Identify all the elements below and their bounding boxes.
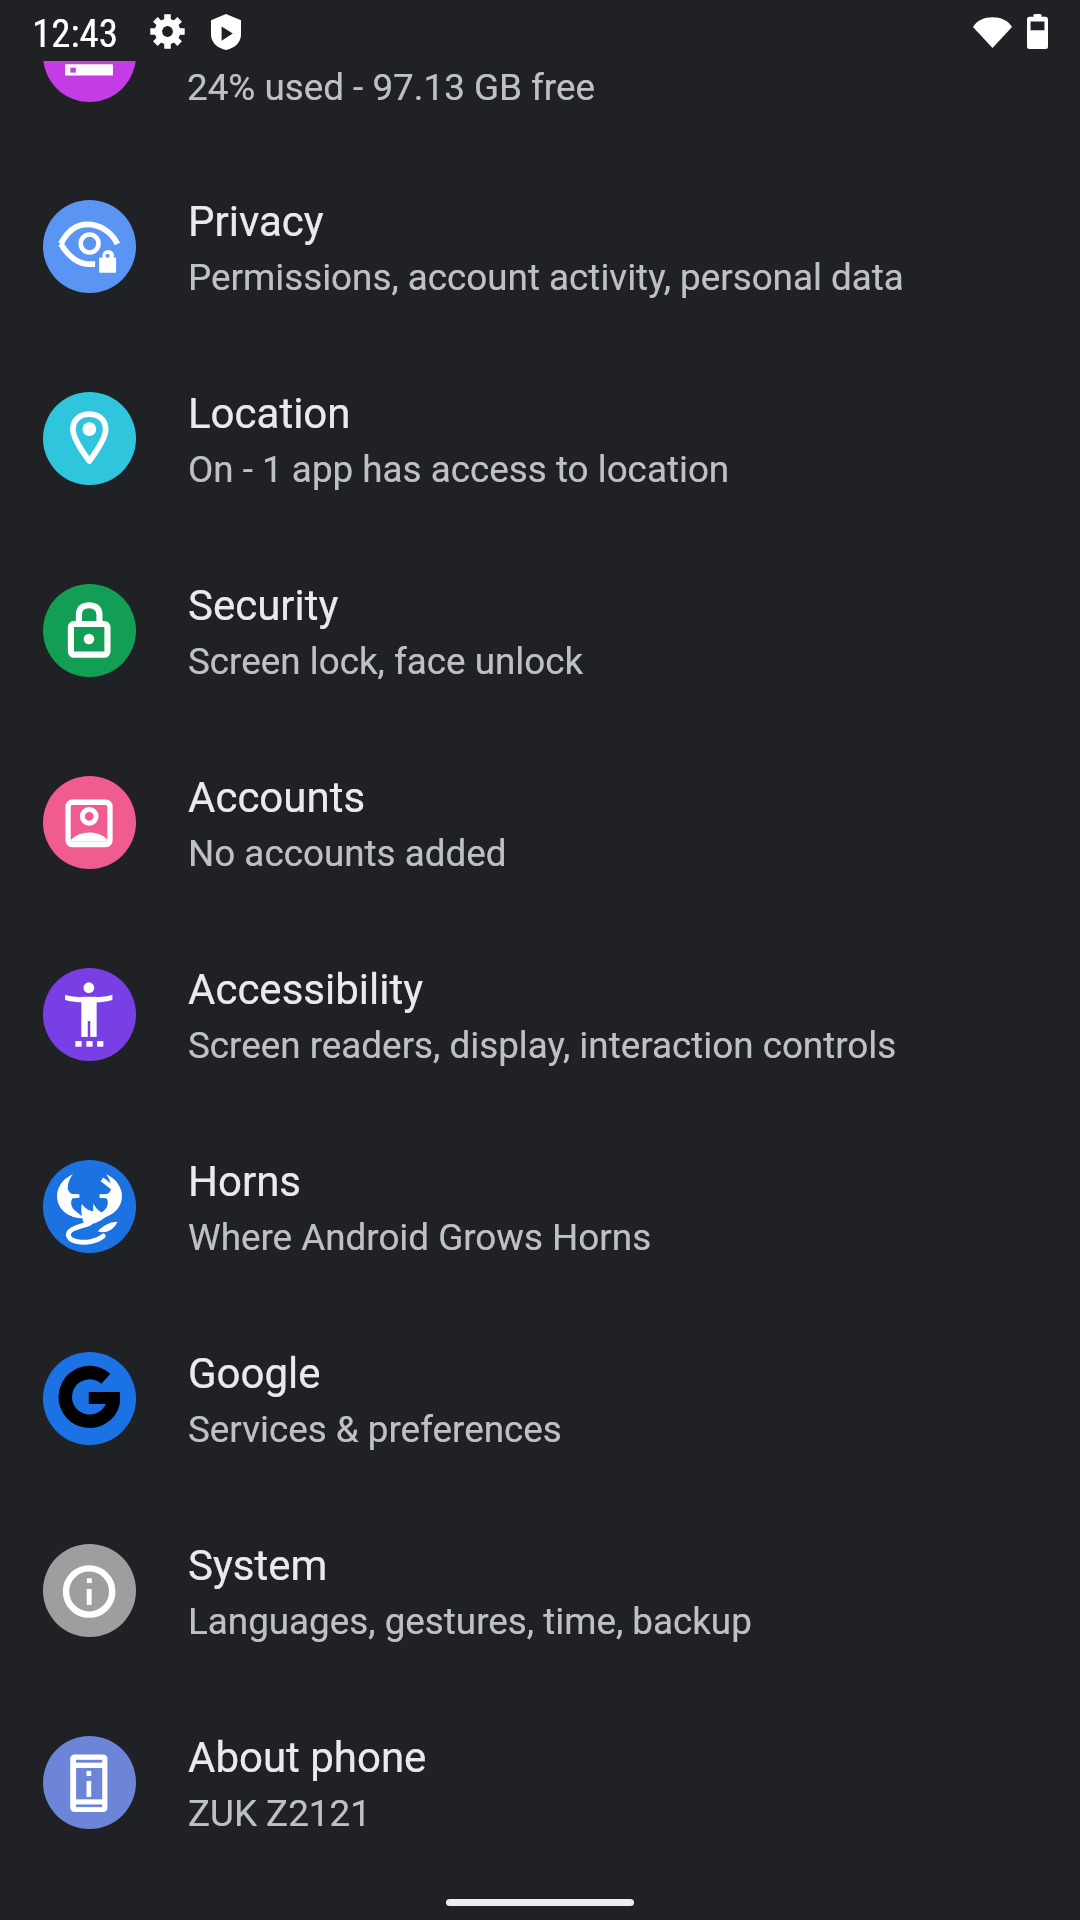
button[interactable]: Horns <box>0 1110 1080 1302</box>
button[interactable]: Location <box>0 342 1080 534</box>
staticText: Privacy <box>188 197 324 246</box>
button[interactable]: Google <box>0 1302 1080 1494</box>
staticText: Where Android Grows Horns <box>188 1216 652 1259</box>
staticText: 12:43 <box>32 11 119 57</box>
staticText: Location <box>188 389 351 438</box>
other: Home <box>446 1899 634 1906</box>
other: Settings <box>151 14 184 49</box>
staticText: Permissions, account activity, personal … <box>188 256 904 299</box>
button[interactable]: Accounts <box>0 726 1080 918</box>
staticText: Accounts <box>188 773 366 822</box>
staticText: About phone <box>188 1733 427 1782</box>
other: Play Protect <box>211 14 241 50</box>
staticText: System <box>188 1541 328 1590</box>
staticText: Screen readers, display, interaction con… <box>188 1024 897 1067</box>
staticText: Languages, gestures, time, backup <box>188 1600 752 1643</box>
staticText: 24% used - 97.13 GB free <box>187 66 596 109</box>
button[interactable]: Privacy <box>0 150 1080 342</box>
staticText: No accounts added <box>188 832 507 875</box>
staticText: Horns <box>188 1157 302 1206</box>
staticText: Google <box>188 1349 321 1398</box>
staticText: Screen lock, face unlock <box>188 640 584 683</box>
button[interactable]: System <box>0 1494 1080 1686</box>
button[interactable]: About phone <box>0 1686 1080 1878</box>
other: Wi-Fi <box>973 14 1012 48</box>
staticText: Accessibility <box>188 965 424 1014</box>
other: Battery <box>1027 14 1048 49</box>
staticText: Services & preferences <box>188 1408 562 1451</box>
staticText: ZUK Z2121 <box>188 1792 371 1835</box>
button[interactable]: 24% used - 97.13 GB free <box>0 61 1080 169</box>
staticText: On - 1 app has access to location <box>188 448 730 491</box>
button[interactable]: Security <box>0 534 1080 726</box>
button[interactable]: Accessibility <box>0 918 1080 1110</box>
staticText: Security <box>188 581 339 630</box>
